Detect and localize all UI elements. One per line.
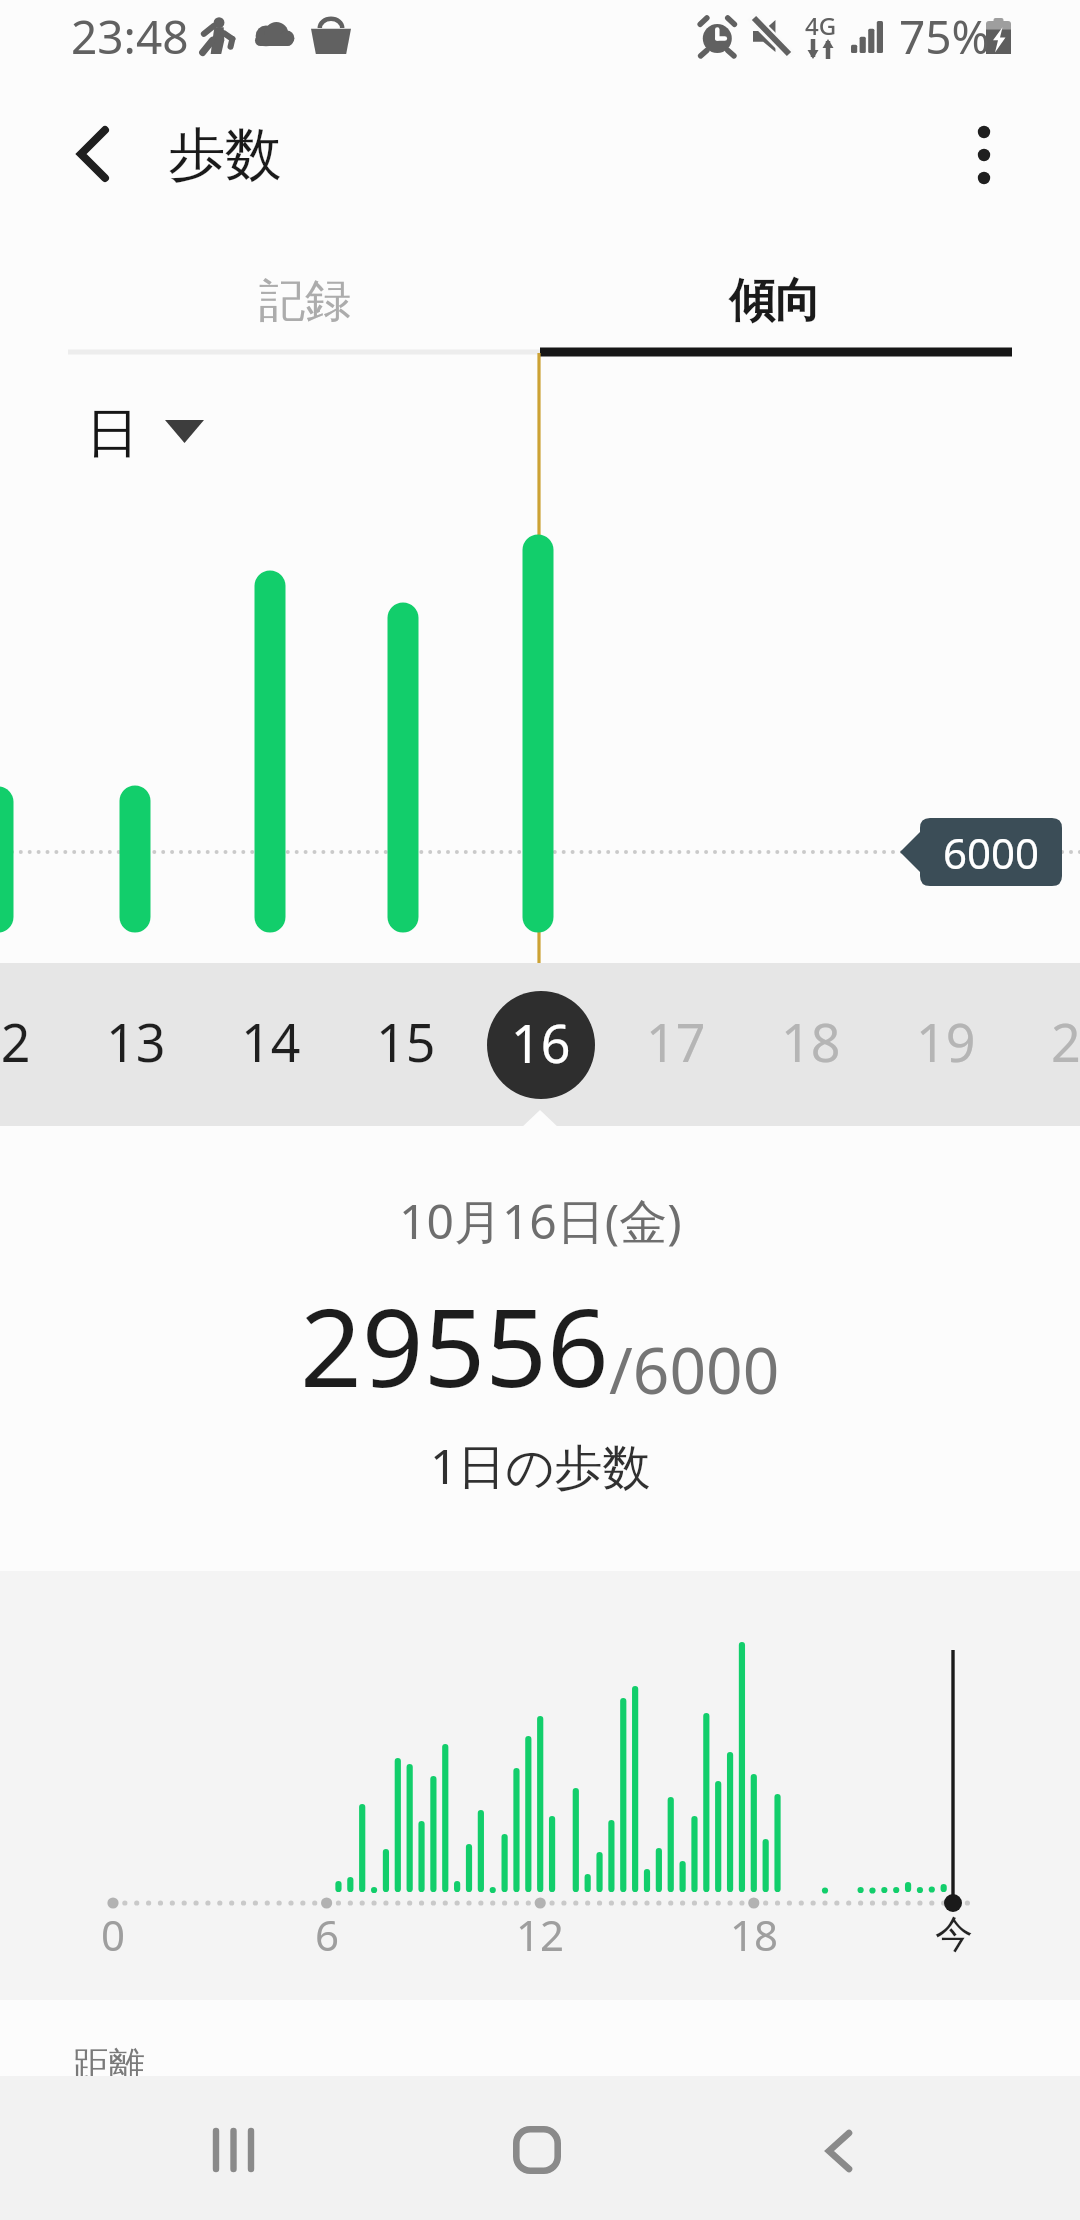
button[interactable]: 16 [473,963,608,1126]
staticText: 1日の歩数 [430,1433,651,1499]
staticText: 12 [516,1906,565,1963]
staticText: 6 [315,1906,340,1963]
button[interactable]: 18 [743,963,878,1126]
button[interactable]: Back [45,106,141,202]
button[interactable]: Change period: day [80,393,210,463]
staticText: 29556 [300,1272,609,1419]
staticText: 距離 [73,2042,145,2087]
staticText: 4G [805,9,837,42]
staticText: 18 [781,1006,841,1077]
staticText: 傾向 [729,272,821,330]
staticText: /6000 [609,1326,780,1413]
button[interactable]: 17 [608,963,743,1126]
staticText: 23:48 [71,5,189,68]
staticText: 17 [646,1006,706,1077]
button[interactable]: 19 [878,963,1013,1126]
button[interactable]: 14 [203,963,338,1126]
button[interactable]: 傾向 [705,240,845,360]
staticText: 19 [916,1006,976,1077]
button[interactable]: 記録 [235,240,375,360]
staticText: 今 [935,1910,973,1958]
staticText: 記録 [259,272,351,330]
staticText: 10月16日(金) [399,1188,682,1254]
staticText: 13 [106,1006,166,1077]
staticText: 18 [730,1906,779,1963]
button[interactable]: Back [779,2090,899,2210]
staticText: 14 [241,1006,301,1077]
staticText: 6000 [943,824,1040,881]
staticText: 0 [101,1906,126,1963]
staticText: 20 [1051,1006,1080,1077]
button[interactable]: 13 [68,963,203,1126]
button[interactable]: 15 [338,963,473,1126]
button[interactable]: Home [477,2090,597,2210]
button[interactable]: Recent apps [175,2090,295,2210]
staticText: 75% [899,5,990,68]
staticText: 歩数 [168,119,282,191]
button[interactable]: More options [936,107,1032,203]
staticText: 16 [511,1007,571,1078]
staticText: 12 [0,1006,31,1077]
button[interactable]: 20 [1013,963,1080,1126]
staticText: 15 [376,1006,436,1077]
staticText: 日 [86,400,139,463]
button[interactable]: 12 [0,963,68,1126]
